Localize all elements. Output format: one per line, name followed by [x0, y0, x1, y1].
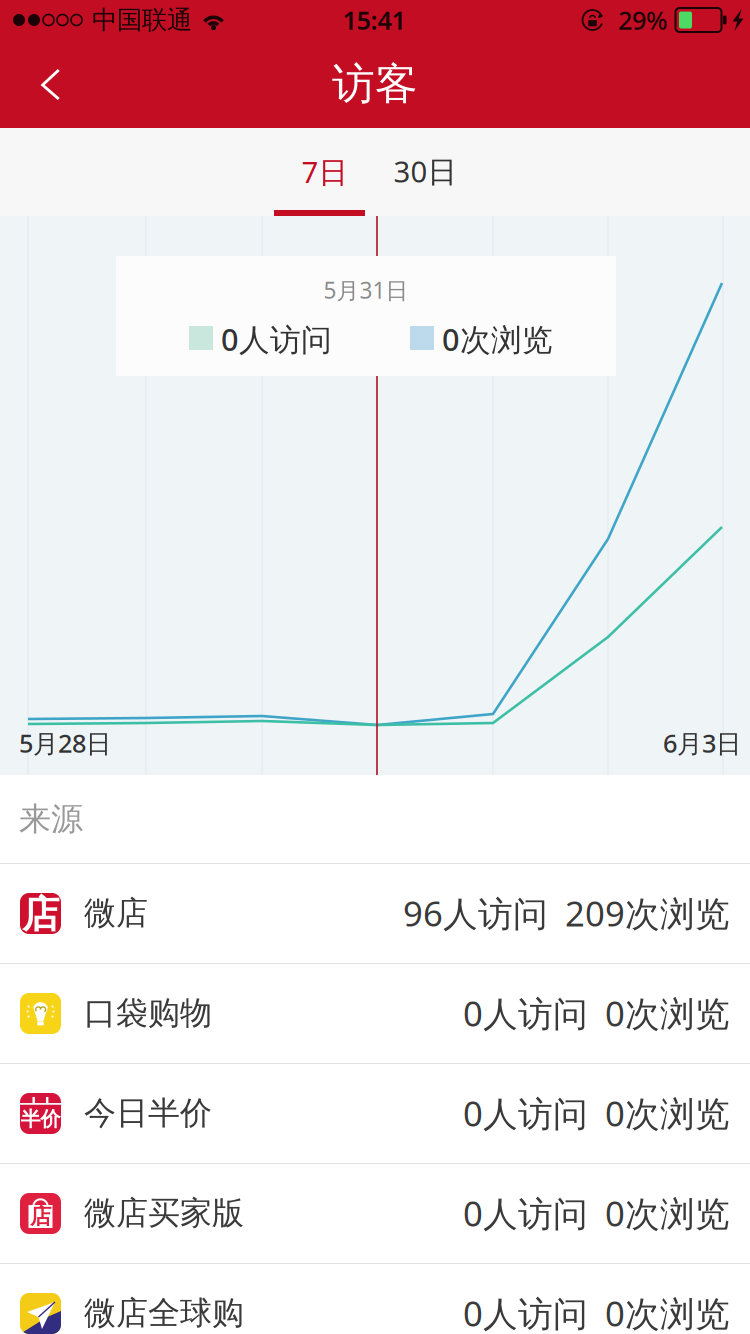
staticText: 0人访问 [463, 1190, 588, 1236]
staticText: 微店 [84, 893, 148, 933]
staticText: 29% [618, 3, 668, 37]
staticText: 6月3日 [663, 726, 741, 760]
staticText: 7日 [301, 152, 347, 191]
staticText: 5月28日 [19, 726, 111, 760]
staticText: 微店买家版 [84, 1193, 244, 1233]
staticText: 0次浏览 [605, 1090, 730, 1136]
staticText: 店 [22, 892, 59, 937]
staticText: 来源 [19, 799, 83, 839]
staticText: 0次浏览 [605, 1190, 730, 1236]
staticText: 微店全球购 [84, 1293, 244, 1333]
button[interactable]: 店 [0, 1164, 750, 1264]
staticText: 0次浏览 [442, 319, 553, 359]
staticText: 0人访问 [463, 1290, 588, 1334]
staticText: 价 [40, 1107, 60, 1131]
button[interactable]: 口袋购物 [0, 964, 750, 1064]
staticText: 半 [20, 1107, 40, 1131]
button[interactable]: 30日 [365, 128, 485, 216]
staticText: 店 [30, 1203, 51, 1230]
staticText: 209次浏览 [565, 890, 730, 936]
staticText: 0人访问 [463, 990, 588, 1036]
button[interactable]: 微店全球购 [0, 1264, 750, 1334]
button[interactable]: 店 [0, 864, 750, 964]
staticText: 96人访问 [403, 890, 548, 936]
staticText: 中国联通 [92, 4, 192, 35]
staticText: 30日 [393, 151, 456, 190]
staticText: 15:41 [342, 3, 405, 37]
staticText: 0人访问 [463, 1090, 588, 1136]
staticText: 0次浏览 [605, 990, 730, 1036]
staticText: 5月31日 [323, 275, 408, 305]
staticText: 口袋购物 [84, 993, 212, 1033]
staticText: 今日半价 [84, 1093, 212, 1133]
button[interactable]: 半 [0, 1064, 750, 1164]
staticText: 访客 [332, 58, 418, 110]
button[interactable]: 返回 [0, 40, 88, 128]
staticText: 0次浏览 [605, 1290, 730, 1334]
staticText: 0人访问 [221, 319, 332, 359]
button[interactable]: 7日 [274, 128, 375, 216]
